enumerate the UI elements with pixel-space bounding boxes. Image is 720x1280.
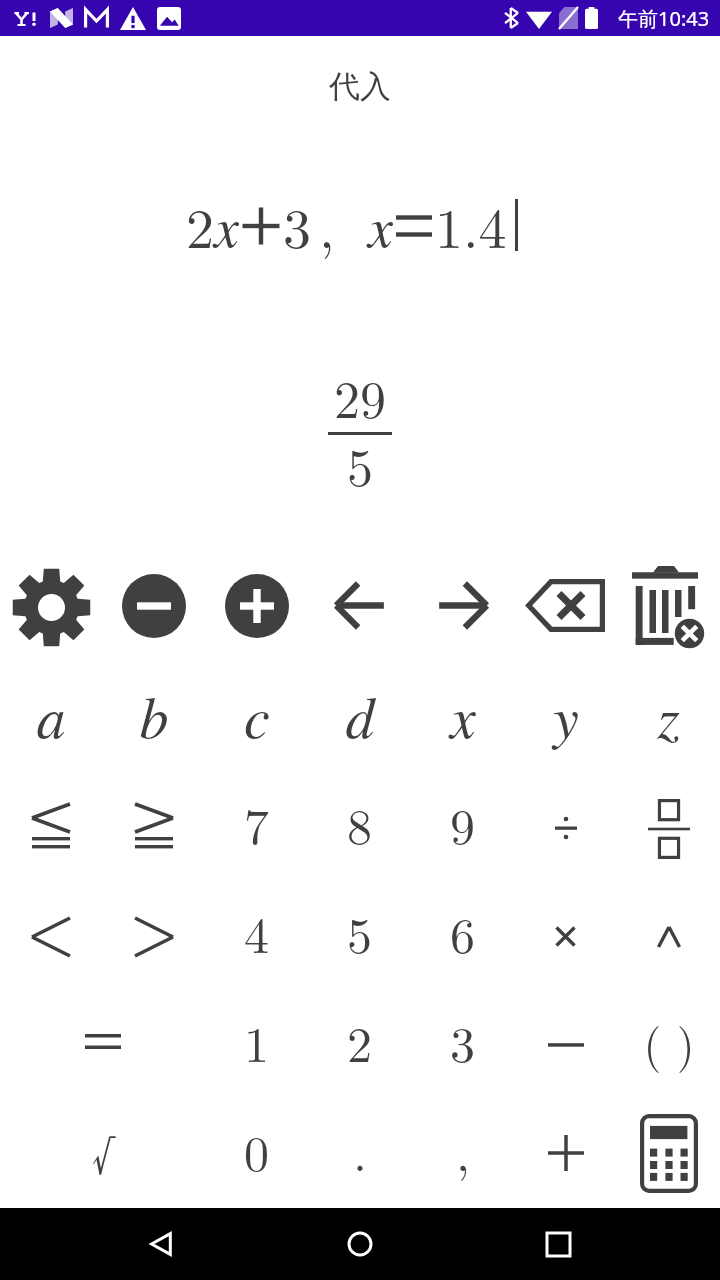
- button[interactable]: ,: [411, 1096, 514, 1205]
- button[interactable]: Minus: [514, 987, 617, 1096]
- button[interactable]: 2: [308, 987, 411, 1096]
- staticText: 1: [244, 1006, 269, 1077]
- button[interactable]: Back: [126, 1208, 198, 1280]
- button[interactable]: Move left: [308, 551, 411, 660]
- button[interactable]: Recents: [522, 1208, 594, 1280]
- button[interactable]: Backspace: [514, 551, 617, 660]
- button[interactable]: y: [514, 660, 617, 769]
- button[interactable]: Clear all: [617, 551, 720, 660]
- staticText: .: [353, 1115, 367, 1186]
- button[interactable]: 3: [411, 987, 514, 1096]
- button[interactable]: Move right: [411, 551, 514, 660]
- staticText: 午前10:43: [618, 5, 710, 32]
- staticText: z: [657, 676, 680, 754]
- staticText: ,: [456, 1115, 470, 1186]
- button[interactable]: 7: [205, 769, 308, 878]
- button[interactable]: Equals: [0, 987, 205, 1096]
- staticText: 5: [347, 427, 374, 487]
- button[interactable]: Increase: [205, 551, 308, 660]
- button[interactable]: a: [0, 660, 102, 769]
- button[interactable]: Multiply: [514, 878, 617, 987]
- staticText: 29: [334, 359, 387, 419]
- staticText: 8: [347, 788, 372, 859]
- staticText: 4: [244, 897, 269, 968]
- staticText: ,: [319, 185, 335, 264]
- staticText: 7: [244, 788, 269, 859]
- staticText: 6: [450, 897, 475, 968]
- button[interactable]: Home: [324, 1208, 396, 1280]
- staticText: a: [36, 676, 66, 754]
- staticText: 2: [347, 1006, 372, 1077]
- staticText: 9: [450, 788, 475, 859]
- staticText: x: [450, 676, 476, 754]
- button[interactable]: Greater than: [102, 878, 205, 987]
- button[interactable]: Settings: [0, 551, 102, 660]
- button[interactable]: Power: [617, 878, 720, 987]
- button[interactable]: d: [308, 660, 411, 769]
- button[interactable]: b: [102, 660, 205, 769]
- staticText: 3: [450, 1006, 475, 1077]
- staticText: 2: [186, 185, 214, 264]
- button[interactable]: Less or equal: [0, 769, 102, 878]
- staticText: x: [214, 187, 239, 262]
- button[interactable]: Calculator: [617, 1096, 720, 1205]
- button[interactable]: Fraction: [617, 769, 720, 878]
- button[interactable]: 1: [205, 987, 308, 1096]
- staticText: 代入: [329, 67, 391, 106]
- staticText: 5: [347, 897, 372, 968]
- button[interactable]: Less than: [0, 878, 102, 987]
- button[interactable]: 6: [411, 878, 514, 987]
- staticText: c: [244, 676, 270, 754]
- button[interactable]: Divide: [514, 769, 617, 878]
- button[interactable]: Square root: [0, 1096, 205, 1205]
- button[interactable]: .: [308, 1096, 411, 1205]
- button[interactable]: c: [205, 660, 308, 769]
- button[interactable]: z: [617, 660, 720, 769]
- staticText: y: [553, 676, 579, 754]
- button[interactable]: x: [411, 660, 514, 769]
- staticText: 3: [283, 185, 311, 264]
- button[interactable]: 9: [411, 769, 514, 878]
- button[interactable]: 4: [205, 878, 308, 987]
- button[interactable]: Plus: [514, 1096, 617, 1205]
- button[interactable]: Decrease: [102, 551, 205, 660]
- button[interactable]: ( ): [617, 987, 720, 1096]
- staticText: x: [368, 187, 393, 262]
- staticText: d: [345, 676, 375, 754]
- button[interactable]: 5: [308, 878, 411, 987]
- staticText: √: [92, 1118, 114, 1183]
- staticText: b: [139, 676, 169, 754]
- button[interactable]: 0: [205, 1096, 308, 1205]
- button[interactable]: 8: [308, 769, 411, 878]
- staticText: 0: [244, 1115, 269, 1186]
- staticText: ( ): [643, 1009, 695, 1074]
- button[interactable]: Greater or equal: [102, 769, 205, 878]
- staticText: 1.4: [435, 185, 507, 264]
